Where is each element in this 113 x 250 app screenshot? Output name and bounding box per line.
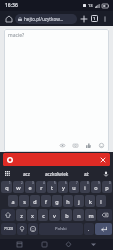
- button[interactable]: hejto.pl/uzytkow...: [15, 14, 77, 24]
- button[interactable]: Home: [39, 239, 50, 250]
- staticText: t: [51, 184, 53, 191]
- staticText: i: [84, 184, 86, 191]
- button[interactable]: v: [49, 209, 60, 221]
- staticText: f: [45, 198, 47, 205]
- staticText: n: [77, 212, 81, 219]
- staticText: 0: [109, 181, 111, 185]
- button[interactable]: More options: [100, 14, 110, 24]
- button[interactable]: acz: [14, 167, 39, 180]
- button[interactable]: m: [85, 209, 96, 221]
- button[interactable]: Back: [63, 239, 74, 250]
- button[interactable]: r: [36, 181, 46, 193]
- staticText: 5: [54, 181, 56, 185]
- button[interactable]: w: [13, 181, 24, 193]
- staticText: macie?: [8, 32, 25, 39]
- staticText: c: [42, 212, 45, 219]
- staticText: 2: [21, 181, 23, 185]
- button[interactable]: aczkolwiek: [39, 167, 74, 180]
- staticText: h: [66, 198, 70, 205]
- button[interactable]: Keyboard down: [88, 239, 99, 250]
- button[interactable]: Preview: [58, 141, 66, 149]
- button[interactable]: Home: [3, 13, 14, 24]
- button[interactable]: Recents: [14, 239, 25, 250]
- staticText: a: [11, 198, 15, 205]
- button[interactable]: aż: [74, 167, 99, 180]
- button[interactable]: ?123: [1, 223, 16, 235]
- button[interactable]: c: [38, 209, 48, 221]
- button[interactable]: y: [58, 181, 68, 193]
- button[interactable]: Clipboard: [0, 167, 14, 180]
- button[interactable]: .: [84, 223, 94, 235]
- staticText: ?123: [4, 226, 14, 232]
- button[interactable]: New tab: [78, 13, 89, 24]
- button[interactable]: k: [85, 195, 95, 207]
- button[interactable]: Polski: [39, 223, 83, 235]
- staticText: 6: [65, 181, 67, 185]
- button[interactable]: s: [19, 195, 29, 207]
- button[interactable]: Emoji: [28, 223, 38, 235]
- staticText: .: [88, 226, 90, 233]
- staticText: m: [88, 212, 94, 219]
- button[interactable]: i: [80, 181, 90, 193]
- button[interactable]: x: [27, 209, 37, 221]
- staticText: s: [23, 198, 26, 205]
- staticText: acz: [23, 171, 30, 177]
- staticText: r: [40, 184, 43, 191]
- staticText: 1: [93, 16, 96, 21]
- button[interactable]: u: [69, 181, 79, 193]
- button[interactable]: t: [47, 181, 57, 193]
- staticText: y: [62, 184, 65, 191]
- staticText: g: [55, 198, 59, 205]
- button[interactable]: Add photo: [71, 141, 79, 149]
- staticText: p: [105, 184, 109, 191]
- staticText: 1: [9, 181, 11, 185]
- button[interactable]: g: [52, 195, 62, 207]
- button[interactable]: a: [8, 195, 18, 207]
- button[interactable]: z: [16, 209, 26, 221]
- staticText: aczkolwiek: [45, 171, 69, 177]
- button[interactable]: e: [25, 181, 35, 193]
- staticText: 8: [87, 181, 89, 185]
- staticText: l: [100, 198, 102, 205]
- staticText: z: [20, 212, 23, 219]
- button[interactable]: l: [96, 195, 106, 207]
- staticText: 3: [32, 181, 34, 185]
- button[interactable]: n: [73, 209, 84, 221]
- button[interactable]: p: [102, 181, 112, 193]
- staticText: 16:36: [5, 2, 18, 9]
- staticText: o: [94, 184, 98, 191]
- button[interactable]: q: [1, 181, 12, 193]
- staticText: hejto.pl/uzytkow...: [24, 16, 64, 22]
- button[interactable]: h: [63, 195, 73, 207]
- button[interactable]: b: [61, 209, 72, 221]
- staticText: b: [65, 212, 69, 219]
- button[interactable]: Attach: [84, 141, 92, 149]
- staticText: k: [89, 198, 92, 205]
- button[interactable]: f: [41, 195, 51, 207]
- staticText: d: [33, 198, 37, 205]
- staticText: j: [78, 198, 80, 205]
- button[interactable]: d: [30, 195, 40, 207]
- button[interactable]: Shift: [1, 209, 15, 221]
- staticText: e: [28, 184, 32, 191]
- staticText: w: [16, 184, 21, 191]
- button[interactable]: j: [74, 195, 84, 207]
- staticText: x: [31, 212, 34, 219]
- staticText: 9: [98, 181, 100, 185]
- button[interactable]: Backspace: [97, 209, 112, 221]
- staticText: 7: [76, 181, 78, 185]
- staticText: Polski: [55, 226, 67, 232]
- button[interactable]: Enter: [95, 223, 112, 235]
- button[interactable]: Voice input: [99, 167, 113, 180]
- button[interactable]: Tabs: [89, 13, 100, 24]
- button[interactable]: Dismiss: [99, 156, 107, 164]
- button[interactable]: o: [91, 181, 101, 193]
- button[interactable]: Comma: [17, 223, 27, 235]
- staticText: v: [53, 212, 56, 219]
- staticText: 4: [43, 181, 45, 185]
- staticText: aż: [84, 171, 89, 177]
- staticText: u: [72, 184, 76, 191]
- button[interactable]: Emoji: [97, 141, 105, 149]
- staticText: 13: [88, 3, 93, 8]
- button[interactable]: Dismiss: [3, 153, 110, 166]
